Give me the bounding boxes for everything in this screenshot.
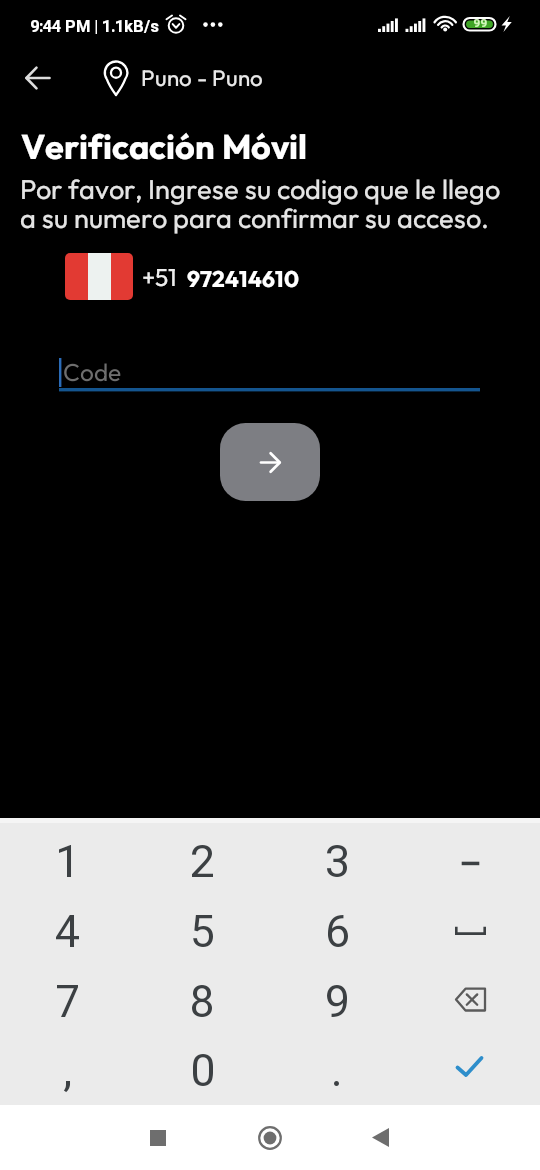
button[interactable]: , — [0, 1034, 135, 1105]
button[interactable]: 4 — [0, 892, 135, 963]
button[interactable]: 3 — [270, 821, 405, 892]
button[interactable]: 1 — [0, 821, 135, 892]
button[interactable]: . — [270, 1034, 405, 1105]
button[interactable]: Back — [335, 1105, 425, 1170]
button[interactable]: 6 — [270, 892, 405, 963]
button[interactable]: Code — [59, 352, 480, 394]
button[interactable]: Home — [225, 1105, 315, 1170]
button[interactable]: space — [405, 892, 540, 963]
button[interactable]: done — [405, 1034, 540, 1105]
button[interactable]: Back — [9, 50, 65, 106]
button[interactable]: 7 — [0, 963, 135, 1034]
button[interactable]: 2 — [135, 821, 270, 892]
button[interactable]: Puno - Puno — [95, 52, 270, 104]
button[interactable]: 5 — [135, 892, 270, 963]
button[interactable]: 8 — [135, 963, 270, 1034]
button[interactable]: minus — [405, 821, 540, 892]
button[interactable]: backspace — [405, 963, 540, 1034]
button[interactable]: 9 — [270, 963, 405, 1034]
button[interactable]: 0 — [135, 1034, 270, 1105]
button[interactable]: Recent apps — [113, 1105, 203, 1170]
button[interactable]: Continue — [220, 423, 320, 501]
